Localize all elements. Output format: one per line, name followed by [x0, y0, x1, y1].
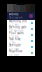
staticText: Activity: [9, 12, 18, 16]
button[interactable]: Evening cycle: [7, 26, 35, 32]
staticText: 45 min: [9, 47, 19, 50]
staticText: Strength: [9, 43, 21, 47]
staticText: 30 min: [9, 53, 19, 56]
button[interactable]: Strength: [7, 44, 35, 50]
staticText: 18 km ride: [9, 29, 24, 32]
staticText: 5.2 km: [9, 23, 18, 26]
staticText: This week: [9, 16, 22, 19]
button[interactable]: Pool swim: [7, 32, 35, 38]
button[interactable]: Trail hike: [7, 38, 35, 44]
button[interactable]: Yoga flow: [7, 50, 35, 56]
staticText: Trail hike: [9, 37, 21, 41]
staticText: Morning run: [9, 19, 27, 23]
staticText: 1.2 km: [9, 35, 18, 38]
staticText: Yoga flow: [9, 49, 22, 53]
staticText: Evening cycle: [9, 25, 27, 29]
button[interactable]: Morning run: [7, 20, 35, 26]
staticText: Pool swim: [9, 31, 23, 35]
staticText: 7 km: [9, 41, 15, 44]
